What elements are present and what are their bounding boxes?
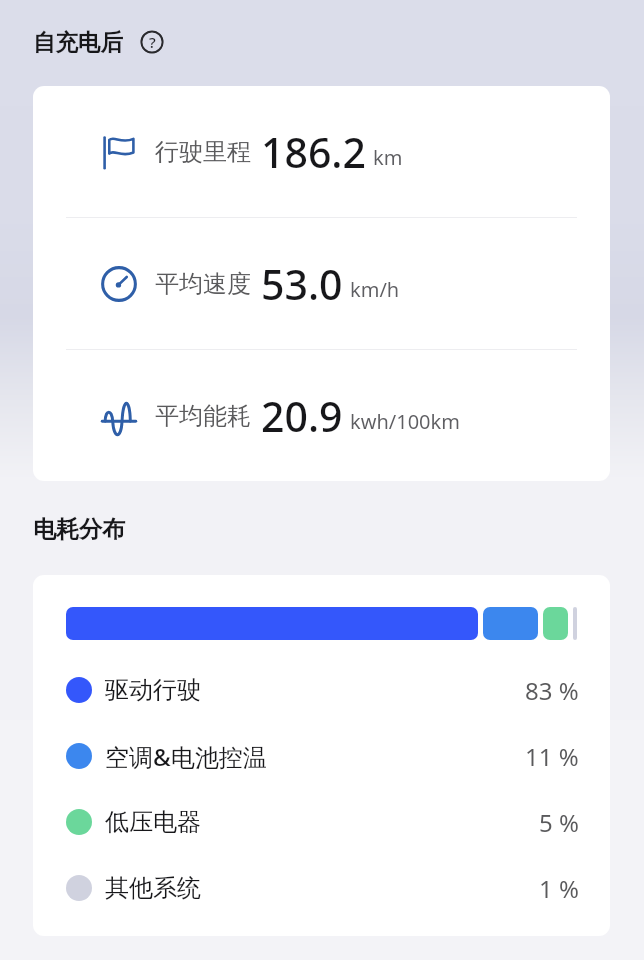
- staticText: 平均能耗: [155, 401, 251, 431]
- staticText: 83 %: [525, 674, 579, 707]
- staticText: 平均速度: [155, 269, 251, 299]
- staticText: 行驶里程: [155, 137, 251, 167]
- staticText: 20.9: [261, 388, 343, 444]
- button[interactable]: 平均能耗: [33, 350, 610, 481]
- button[interactable]: 空调&电池控温: [66, 723, 579, 789]
- staticText: 空调&电池控温: [105, 740, 267, 773]
- button[interactable]: 平均速度: [33, 218, 610, 349]
- staticText: 186.2: [261, 124, 366, 180]
- staticText: 电耗分布: [33, 515, 125, 544]
- staticText: 其他系统: [105, 873, 201, 903]
- staticText: 53.0: [261, 256, 343, 312]
- staticText: 低压电器: [105, 807, 201, 837]
- staticText: ?: [149, 32, 156, 52]
- staticText: 11 %: [525, 740, 579, 773]
- staticText: 1 %: [539, 872, 579, 905]
- staticText: 驱动行驶: [105, 675, 201, 705]
- button[interactable]: 驱动行驶: [66, 657, 579, 723]
- staticText: 5 %: [539, 806, 579, 839]
- staticText: km: [373, 144, 403, 171]
- button[interactable]: 低压电器: [66, 789, 579, 855]
- button[interactable]: 其他系统: [66, 855, 579, 921]
- button[interactable]: 行驶里程: [33, 86, 610, 217]
- staticText: km/h: [350, 276, 400, 303]
- staticText: kwh/100km: [350, 408, 460, 435]
- staticText: 自充电后: [33, 28, 123, 56]
- button[interactable]: Help: [140, 30, 164, 54]
